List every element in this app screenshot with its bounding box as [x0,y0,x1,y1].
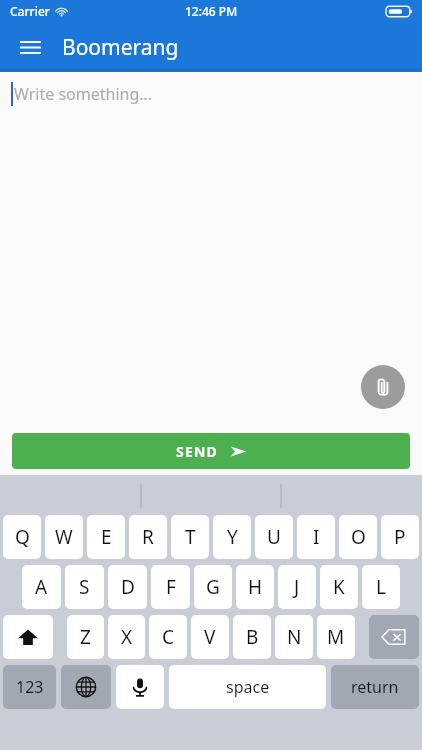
staticText: Boomerang [62,33,179,62]
button[interactable]: A [22,565,61,609]
staticText: F [166,574,176,600]
button[interactable]: space [169,665,326,709]
staticText: R [142,524,154,550]
staticText: O [351,524,366,550]
staticText: Z [80,624,91,650]
staticText: C [162,624,175,650]
staticText: M [327,624,345,650]
button[interactable]: J [278,565,316,609]
button[interactable]: Voice input [116,665,164,709]
button[interactable]: S [65,565,104,609]
button[interactable]: Y [213,515,251,559]
button[interactable]: U [255,515,293,559]
staticText: S [79,574,90,600]
button[interactable]: H [236,565,274,609]
staticText: V [204,624,216,650]
staticText: X [121,624,133,650]
staticText: D [121,574,135,600]
staticText: K [333,574,345,600]
staticText: A [35,574,48,600]
button[interactable]: D [108,565,147,609]
button[interactable]: F [151,565,190,609]
button[interactable]: L [362,565,400,609]
button[interactable]: M [317,615,355,659]
staticText: I [313,524,320,550]
button[interactable]: T [171,515,209,559]
button[interactable]: I [297,515,335,559]
button[interactable]: P [381,515,419,559]
staticText: SEND [176,442,218,461]
button[interactable]: B [233,615,271,659]
button[interactable]: return [331,665,419,709]
staticText: T [185,524,196,550]
staticText: B [246,624,259,650]
button[interactable]: K [320,565,358,609]
staticText: 12:46 PM [185,3,238,19]
staticText: Write something... [14,83,153,105]
button[interactable]: Shift [3,615,53,659]
staticText: Carrier [10,3,50,19]
staticText: return [351,676,399,698]
button[interactable]: Attach file [361,365,405,409]
button[interactable]: Q [3,515,41,559]
button[interactable]: G [194,565,232,609]
staticText: W [55,524,73,550]
button[interactable]: O [339,515,377,559]
button[interactable]: Z [67,615,104,659]
button[interactable]: C [149,615,187,659]
staticText: G [206,574,220,600]
button[interactable]: V [191,615,229,659]
button[interactable]: R [129,515,167,559]
staticText: H [248,574,263,600]
staticText: Y [227,524,238,550]
staticText: U [267,524,281,550]
button[interactable]: Open navigation menu [8,25,52,69]
staticText: P [394,524,406,550]
button[interactable]: SEND [12,433,410,469]
staticText: N [287,624,302,650]
button[interactable]: 123 [3,665,56,709]
button[interactable]: W [45,515,83,559]
staticText: space [226,676,270,698]
staticText: Q [15,524,30,550]
staticText: 123 [16,676,44,698]
staticText: J [294,574,300,600]
button[interactable]: Delete [369,615,419,659]
button[interactable]: E [87,515,125,559]
button[interactable]: N [275,615,313,659]
staticText: L [376,574,386,600]
button[interactable]: X [108,615,145,659]
button[interactable]: Change keyboard [61,665,111,709]
staticText: E [101,524,112,550]
